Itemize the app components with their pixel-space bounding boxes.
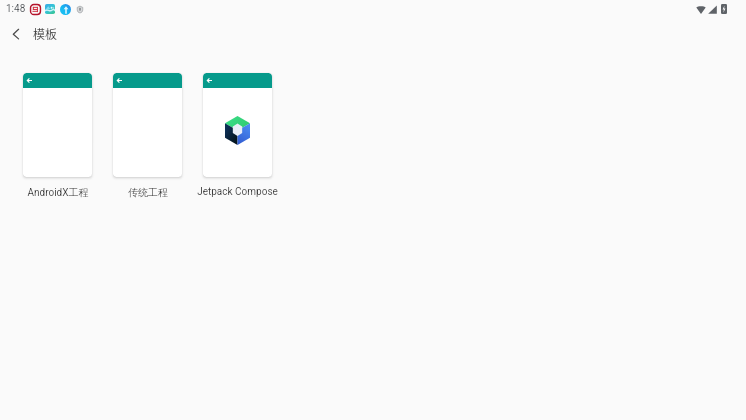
staticText: 传统工程 — [128, 186, 168, 199]
button[interactable]: Back — [0, 18, 30, 48]
button[interactable] — [113, 73, 182, 177]
button[interactable] — [23, 73, 92, 177]
button[interactable] — [203, 73, 272, 177]
staticText: 1:48 — [6, 3, 26, 15]
staticText: 模板 — [33, 25, 58, 42]
staticText: AndroidX工程 — [27, 186, 89, 199]
staticText: Jetpack Compose — [197, 186, 278, 198]
